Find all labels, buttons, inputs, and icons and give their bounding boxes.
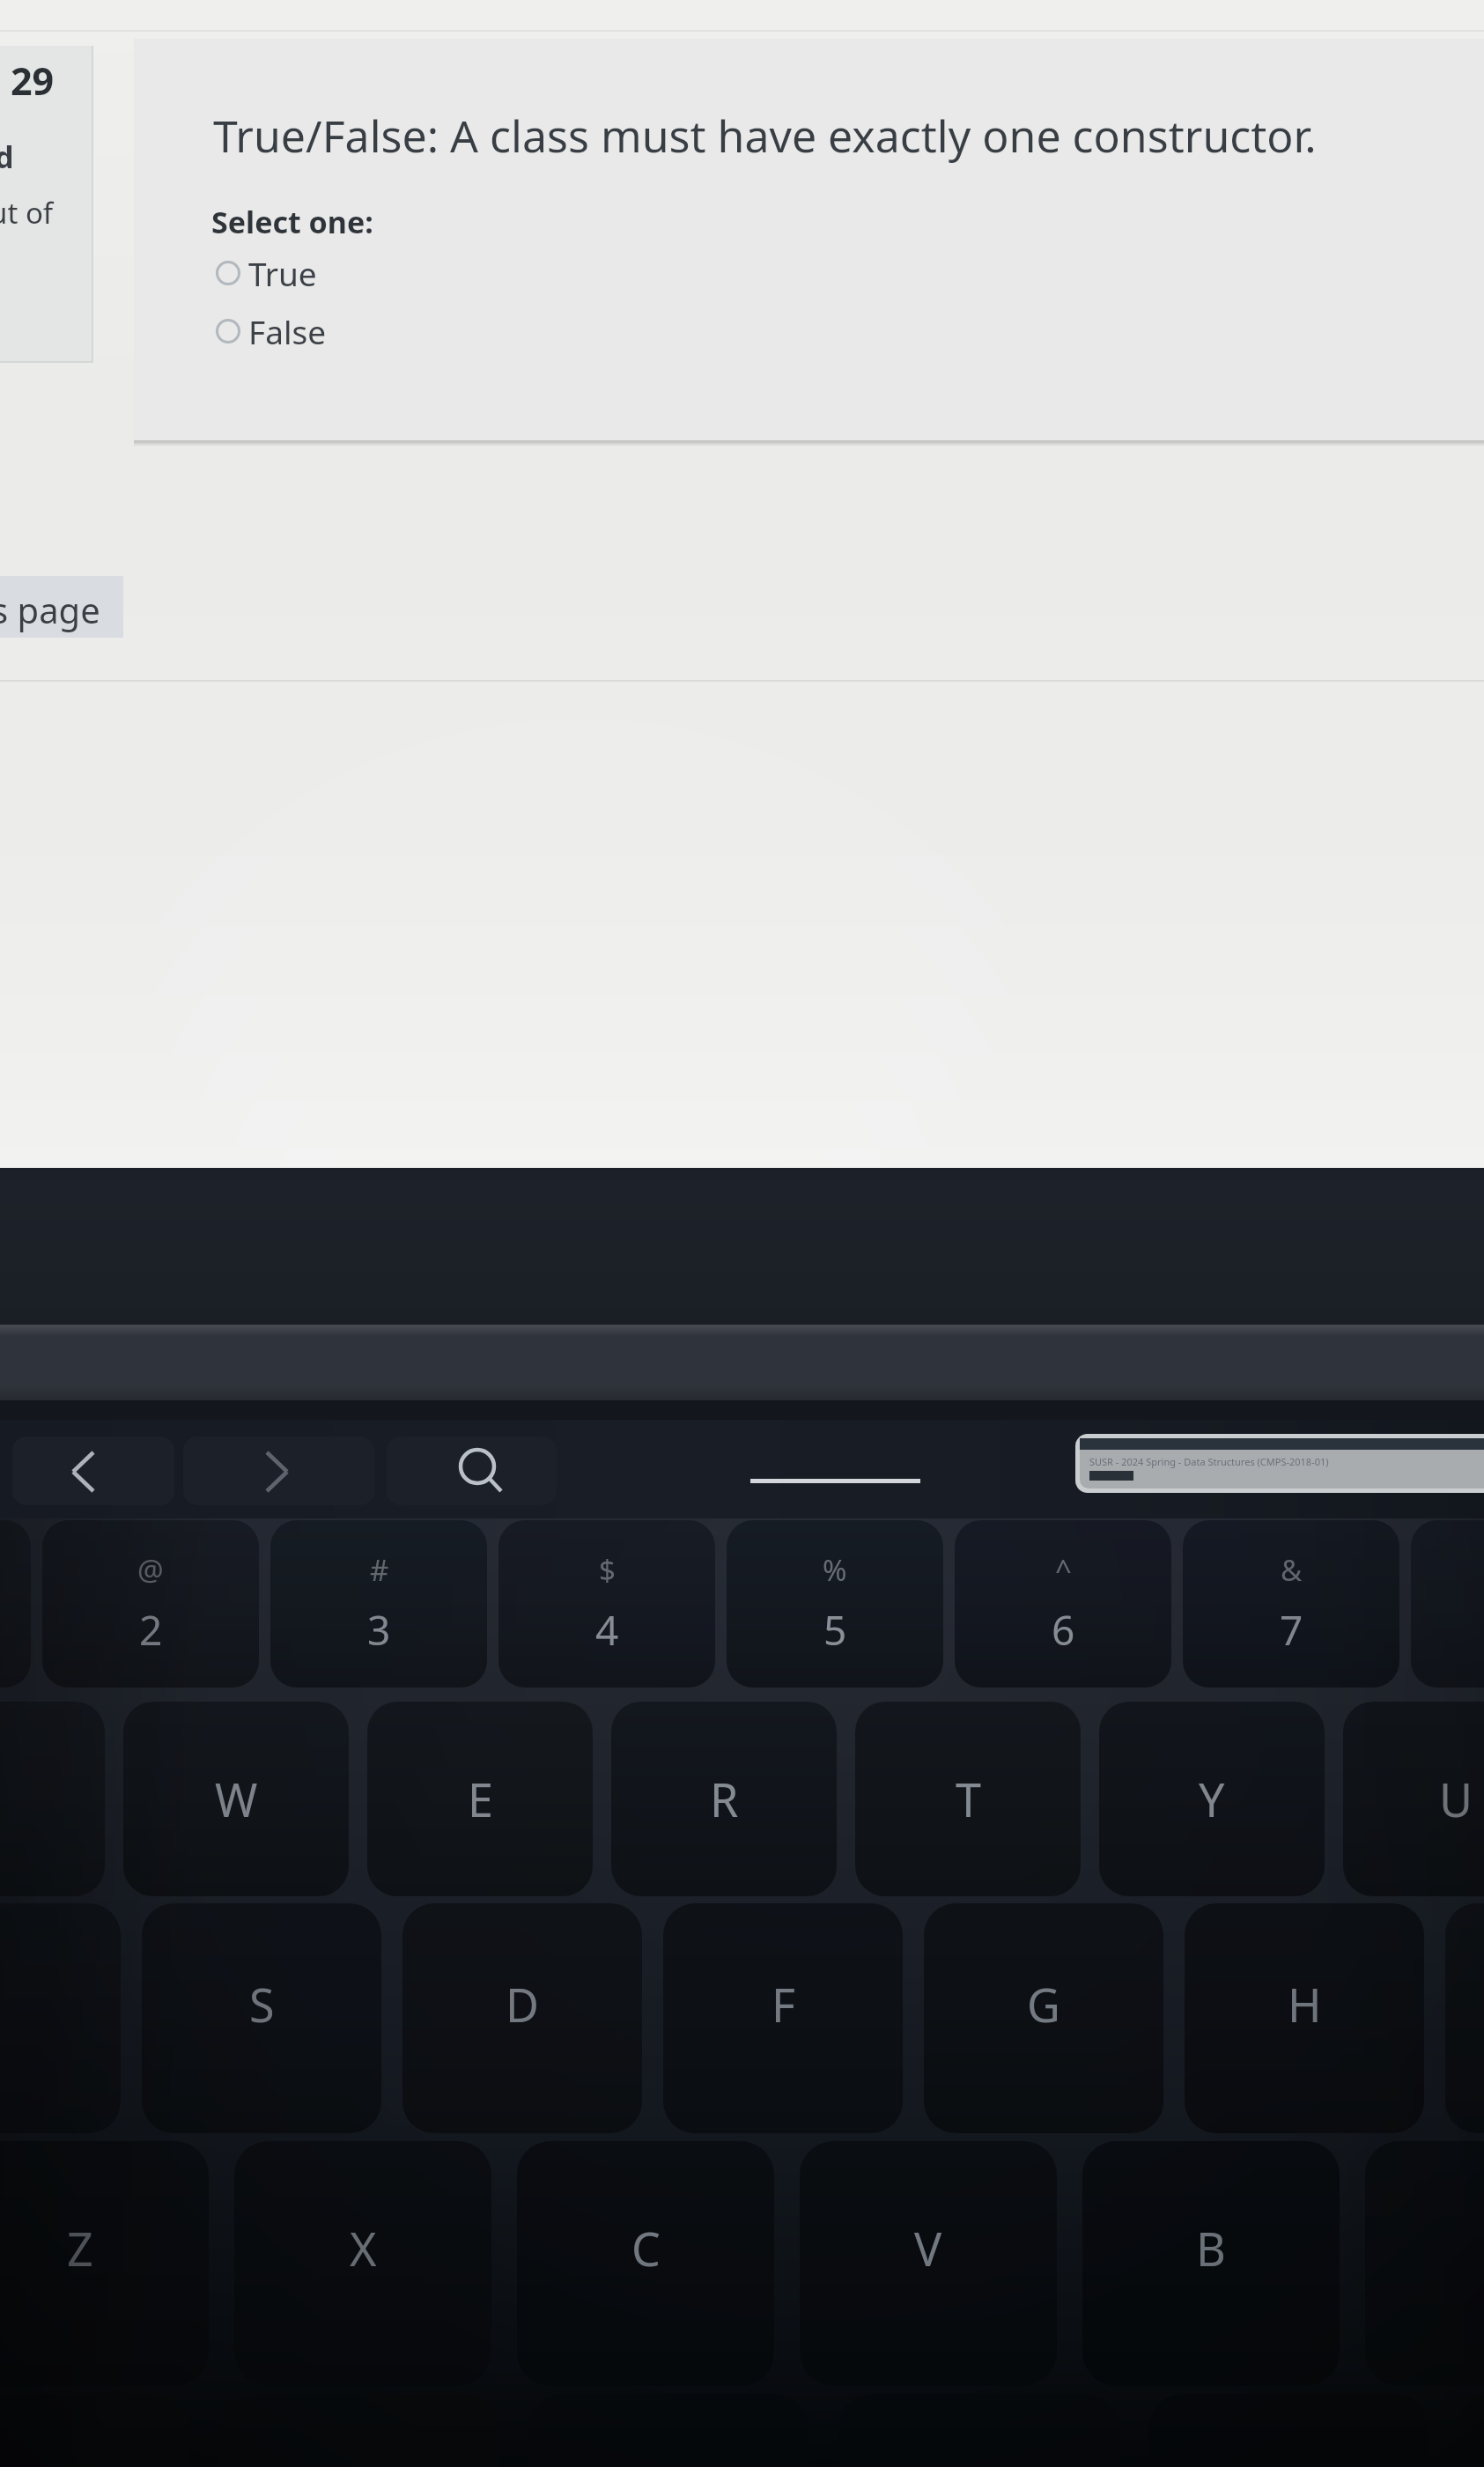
- button[interactable]: Key B: [1082, 2141, 1340, 2386]
- staticText: H: [1288, 1973, 1322, 2035]
- staticText: SUSR - 2024 Spring - Data Structures (CM…: [1089, 1455, 1329, 1468]
- staticText: 4: [595, 1602, 619, 1658]
- button[interactable]: False: [216, 309, 327, 353]
- staticText: ^: [1055, 1550, 1072, 1590]
- staticText: V: [914, 2217, 942, 2279]
- button[interactable]: Forward: [183, 1437, 374, 1505]
- button[interactable]: SUSR - 2024 Spring - Data Structures (CM…: [1075, 1434, 1484, 1493]
- staticText: W: [215, 1768, 258, 1830]
- staticText: True: [248, 251, 317, 295]
- staticText: True/False: A class must have exactly on…: [213, 106, 1317, 166]
- staticText: F: [772, 1973, 795, 2035]
- button[interactable]: Back: [12, 1437, 174, 1505]
- staticText: U: [1439, 1768, 1473, 1830]
- button[interactable]: Finish this page: [0, 576, 123, 638]
- button[interactable]: Key 3: [270, 1520, 487, 1688]
- staticText: 7: [1280, 1602, 1303, 1658]
- staticText: G: [1027, 1973, 1060, 2035]
- staticText: D: [506, 1973, 539, 2035]
- staticText: Y: [1199, 1768, 1225, 1830]
- button[interactable]: Key 6: [955, 1520, 1171, 1688]
- button[interactable]: Key C: [517, 2141, 774, 2386]
- staticText: 6: [1052, 1602, 1075, 1658]
- staticText: 5: [823, 1602, 847, 1658]
- staticText: #: [370, 1550, 389, 1590]
- button[interactable]: Key W: [123, 1702, 349, 1896]
- button[interactable]: Key V: [800, 2141, 1057, 2386]
- staticText: s page: [0, 586, 100, 633]
- button[interactable]: Key R: [611, 1702, 837, 1896]
- staticText: $: [599, 1550, 616, 1590]
- button[interactable]: Key 2: [42, 1520, 259, 1688]
- button[interactable]: Key T: [855, 1702, 1081, 1896]
- staticText: R: [710, 1768, 739, 1830]
- staticText: False: [248, 309, 327, 353]
- staticText: 29: [11, 55, 55, 107]
- staticText: B: [1196, 2217, 1226, 2279]
- staticText: ut of: [0, 193, 54, 233]
- staticText: Select one:: [211, 202, 373, 242]
- button[interactable]: True: [216, 251, 317, 295]
- button[interactable]: Key Z: [0, 2141, 209, 2386]
- staticText: d: [0, 137, 14, 177]
- button[interactable]: Key F: [663, 1903, 903, 2133]
- button[interactable]: Key 7: [1183, 1520, 1399, 1688]
- button[interactable]: Key U: [1343, 1702, 1484, 1896]
- staticText: T: [956, 1768, 981, 1830]
- staticText: Z: [67, 2217, 93, 2279]
- button[interactable]: Key G: [924, 1903, 1163, 2133]
- staticText: @: [137, 1550, 164, 1590]
- staticText: E: [468, 1768, 493, 1830]
- staticText: &: [1281, 1550, 1303, 1590]
- button[interactable]: Key Y: [1099, 1702, 1325, 1896]
- button[interactable]: Key X: [234, 2141, 491, 2386]
- staticText: %: [823, 1550, 847, 1590]
- staticText: S: [249, 1973, 275, 2035]
- button[interactable]: Search: [387, 1437, 557, 1505]
- button[interactable]: Key E: [367, 1702, 593, 1896]
- staticText: 2: [139, 1602, 163, 1658]
- button[interactable]: Key 5: [727, 1520, 943, 1688]
- staticText: 3: [367, 1602, 391, 1658]
- button[interactable]: Key 4: [498, 1520, 715, 1688]
- button[interactable]: Key H: [1185, 1903, 1424, 2133]
- staticText: X: [350, 2217, 377, 2279]
- staticText: C: [631, 2217, 661, 2279]
- button[interactable]: Key S: [142, 1903, 381, 2133]
- button[interactable]: Key D: [402, 1903, 642, 2133]
